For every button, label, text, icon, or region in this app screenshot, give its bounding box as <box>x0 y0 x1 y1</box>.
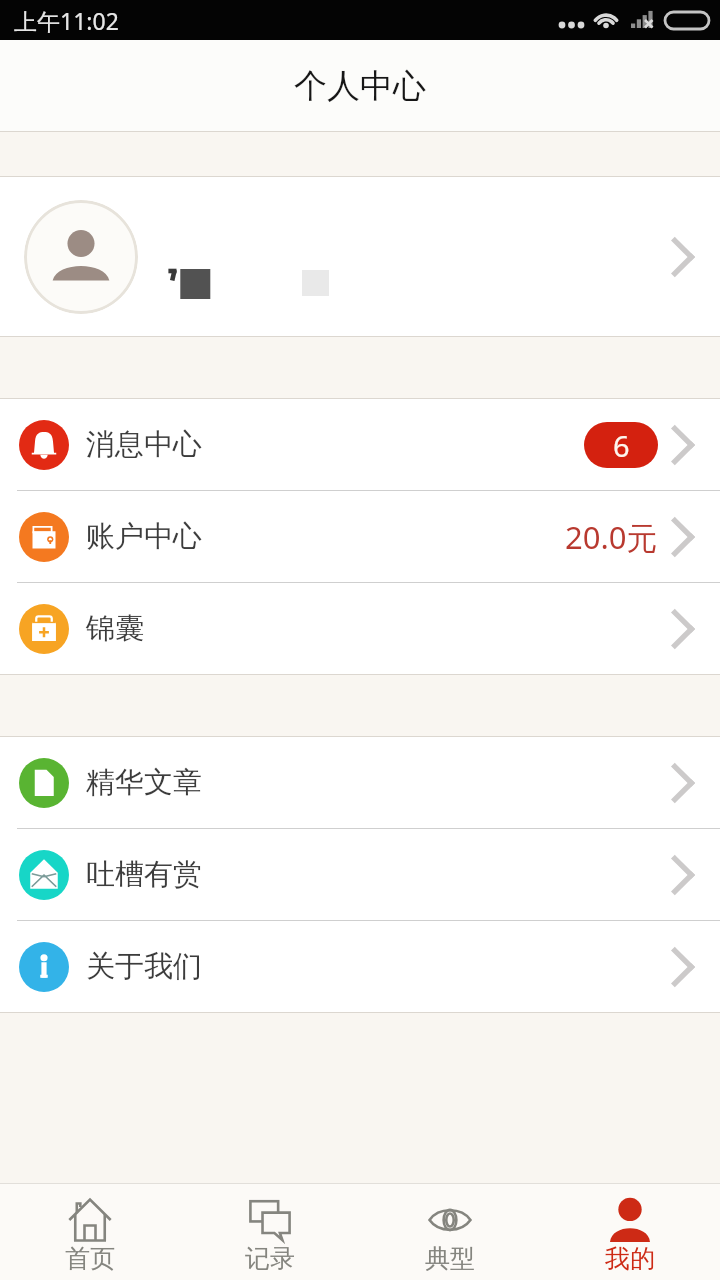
staticText: 账户中心 <box>86 518 202 555</box>
button[interactable]: 关于我们 <box>0 921 720 1012</box>
staticText: 消息中心 <box>86 426 202 463</box>
staticText: 6 <box>613 426 630 465</box>
staticText: 上午11:02 <box>14 5 119 36</box>
staticText: 个人中心 <box>294 65 426 107</box>
staticText: 锦囊 <box>86 610 144 647</box>
staticText: 典型 <box>425 1243 475 1274</box>
staticText: 吐槽有赏 <box>86 856 202 893</box>
button[interactable]: 消息中心 <box>0 399 720 490</box>
button[interactable]: 精华文章 <box>0 737 720 828</box>
button[interactable]: 吐槽有赏 <box>0 829 720 920</box>
button[interactable]: 首页 <box>0 1183 180 1280</box>
staticText: 20.0元 <box>565 516 658 558</box>
button[interactable]: 我的 <box>540 1183 720 1280</box>
staticText: 关于我们 <box>86 948 202 985</box>
button[interactable]: 锦囊 <box>0 583 720 674</box>
staticText: 精华文章 <box>86 764 202 801</box>
staticText: 我的 <box>605 1243 655 1274</box>
button[interactable]: 个人资料 <box>0 177 720 336</box>
button[interactable]: 账户中心 <box>0 491 720 582</box>
button[interactable]: 典型 <box>360 1183 540 1280</box>
staticText: 首页 <box>65 1243 115 1274</box>
staticText: 记录 <box>245 1243 295 1274</box>
button[interactable]: 记录 <box>180 1183 360 1280</box>
